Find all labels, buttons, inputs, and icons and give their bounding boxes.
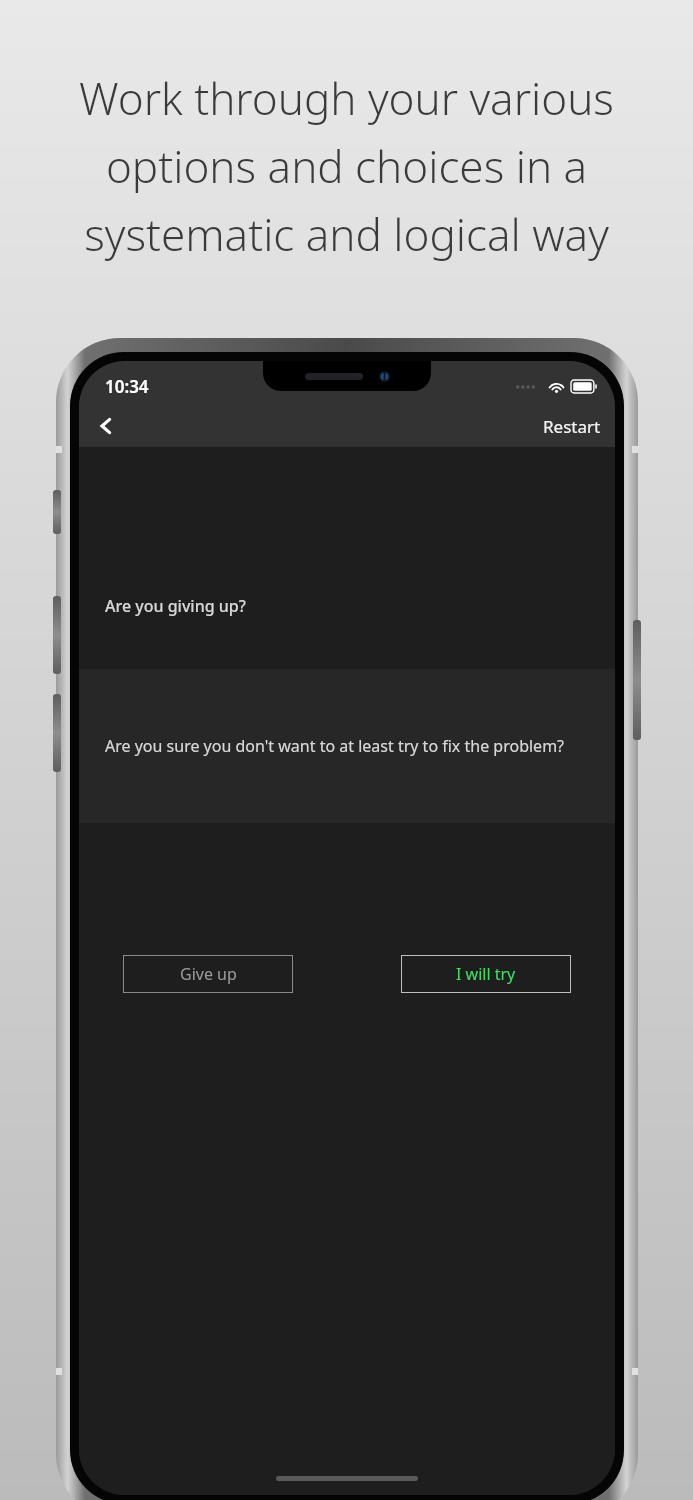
staticText: 10:34 (105, 375, 149, 398)
staticText: I will try (456, 963, 516, 985)
button[interactable]: Back (79, 405, 133, 447)
staticText: Give up (180, 963, 237, 985)
staticText: Are you giving up? (105, 595, 246, 617)
button[interactable]: I will try (401, 955, 571, 993)
button[interactable]: Give up (123, 955, 293, 993)
staticText: Are you sure you don't want to at least … (105, 735, 565, 757)
staticText: Work through your various options and ch… (22, 68, 671, 264)
button[interactable]: Restart (529, 405, 615, 447)
staticText: Restart (543, 415, 601, 438)
